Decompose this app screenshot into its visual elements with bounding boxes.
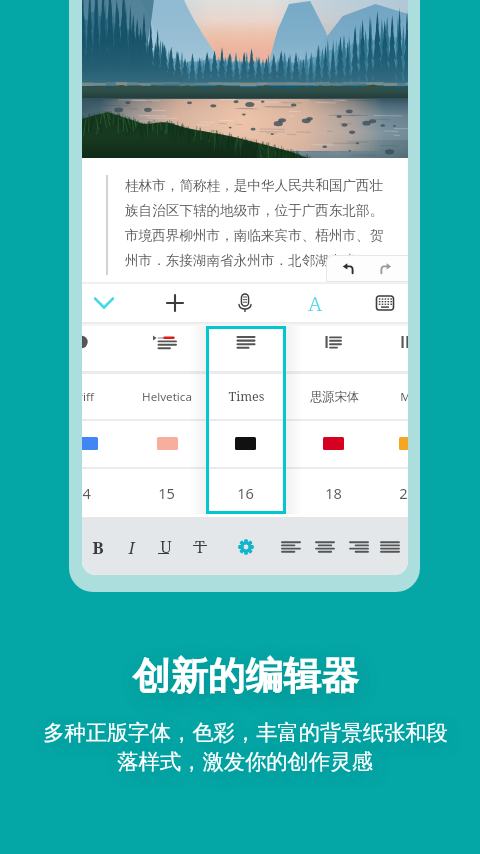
button[interactable] xyxy=(399,437,408,450)
button[interactable] xyxy=(206,326,286,514)
staticText: U xyxy=(160,536,172,558)
button[interactable]: Insert xyxy=(159,287,191,319)
staticText: 州市．东接湖南省永州市．北邻湖南省 xyxy=(125,252,357,269)
staticText: 落样式，激发你的创作灵感 xyxy=(117,748,373,775)
button[interactable]: Align right xyxy=(343,531,375,563)
button[interactable]: Justify xyxy=(374,531,406,563)
staticText: 市境西界柳州市，南临来宾市、梧州市、贺 xyxy=(125,227,384,244)
button[interactable]: Undo xyxy=(339,260,357,278)
button[interactable] xyxy=(157,437,178,450)
staticText: B xyxy=(92,536,104,559)
staticText: 16 xyxy=(237,483,254,503)
staticText: 创新的编辑器 xyxy=(132,653,359,700)
button[interactable]: Collapse xyxy=(88,287,120,319)
staticText: 18 xyxy=(325,483,342,503)
staticText: 14 xyxy=(82,483,91,503)
button[interactable]: B xyxy=(82,531,114,563)
staticText: A xyxy=(308,290,322,317)
staticText: I xyxy=(128,536,135,559)
staticText: 20 xyxy=(399,483,408,503)
button[interactable]: I xyxy=(115,531,147,563)
staticText: 族自治区下辖的地级市，位于广西东北部。 xyxy=(125,202,384,219)
staticText: 15 xyxy=(158,483,175,503)
staticText: 桂林市，简称桂，是中华人民共和国广西壮 xyxy=(125,177,384,194)
button[interactable]: Align left xyxy=(275,531,307,563)
staticText: T xyxy=(195,536,205,558)
button[interactable]: T xyxy=(184,531,216,563)
staticText: 思源宋体 xyxy=(310,389,359,404)
button[interactable]: Voice input xyxy=(229,287,261,319)
staticText: Helvetica xyxy=(142,389,192,405)
staticText: M xyxy=(400,389,408,405)
button[interactable] xyxy=(82,437,98,450)
button[interactable] xyxy=(235,437,256,450)
button[interactable]: A xyxy=(299,287,331,319)
button[interactable]: U xyxy=(150,531,182,563)
button[interactable] xyxy=(323,437,344,450)
button[interactable]: Align center xyxy=(309,531,341,563)
button[interactable]: Keyboard xyxy=(369,287,401,319)
staticText: riff xyxy=(82,389,94,405)
staticText: 多种正版字体，色彩，丰富的背景纸张和段 xyxy=(43,719,448,746)
button[interactable]: Redo xyxy=(377,260,395,278)
staticText: Times xyxy=(228,388,265,405)
button[interactable]: Settings xyxy=(230,531,262,563)
